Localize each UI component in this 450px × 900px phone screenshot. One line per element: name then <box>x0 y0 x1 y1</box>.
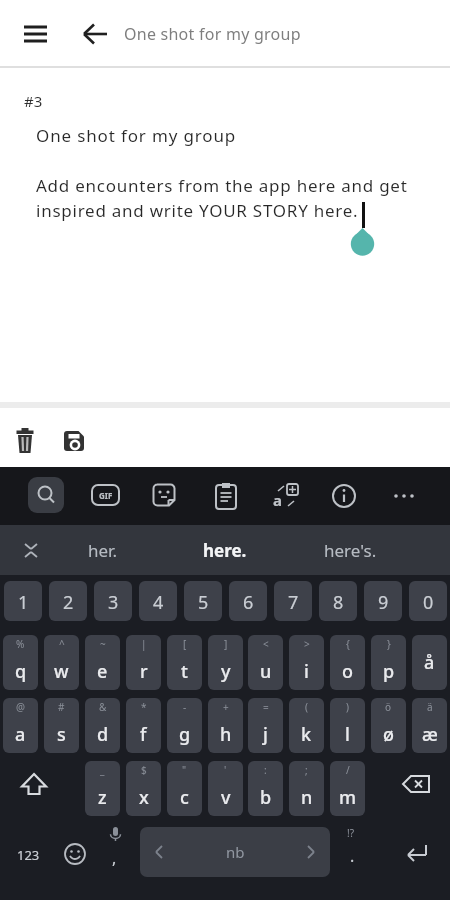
staticText: i <box>304 659 309 684</box>
button[interactable]: å <box>412 635 447 690</box>
staticText: | <box>141 637 147 651</box>
button[interactable]: + <box>208 698 243 753</box>
staticText: 7 <box>288 590 299 615</box>
button[interactable]: here. <box>170 525 280 575</box>
button[interactable]: 4 <box>139 581 177 621</box>
staticText: å <box>424 650 435 675</box>
button[interactable] <box>395 766 439 810</box>
button[interactable]: $ <box>126 761 161 816</box>
button[interactable]: 1 <box>4 581 42 621</box>
button[interactable]: > <box>289 635 324 690</box>
staticText: GIF <box>99 490 113 501</box>
button[interactable] <box>390 482 418 510</box>
button[interactable]: her. <box>50 525 155 575</box>
button[interactable]: ; <box>289 761 324 816</box>
staticText: * <box>141 700 147 714</box>
staticText: æ <box>422 722 438 747</box>
staticText: 0 <box>423 590 434 615</box>
button[interactable]: ) <box>330 698 365 753</box>
staticText: { <box>346 637 350 651</box>
staticText: b <box>260 785 272 810</box>
button[interactable]: 7 <box>274 581 312 621</box>
staticText: ; <box>305 763 308 777</box>
button[interactable]: a <box>272 482 300 510</box>
button[interactable] <box>398 835 436 871</box>
staticText: !? <box>347 826 355 840</box>
button[interactable]: 3 <box>94 581 132 621</box>
button[interactable]: _ <box>85 761 120 816</box>
staticText: , <box>112 847 117 869</box>
staticText: > <box>304 637 310 651</box>
button[interactable]: ä <box>412 698 447 753</box>
button[interactable] <box>28 477 64 513</box>
staticText: @ <box>16 700 25 714</box>
button[interactable] <box>62 841 88 867</box>
button[interactable]: : <box>248 761 283 816</box>
staticText: / <box>346 763 350 777</box>
button[interactable]: GIF <box>91 484 120 506</box>
staticText: & <box>99 700 107 714</box>
button[interactable]: 8 <box>319 581 357 621</box>
button[interactable]: ö <box>371 698 406 753</box>
button[interactable]: } <box>371 635 406 690</box>
button[interactable]: nb <box>140 827 330 877</box>
button[interactable] <box>61 428 87 454</box>
staticText: her. <box>88 539 117 562</box>
button[interactable]: 9 <box>364 581 402 621</box>
button[interactable] <box>12 766 56 810</box>
button[interactable]: 2 <box>49 581 87 621</box>
button[interactable]: % <box>3 635 38 690</box>
button[interactable]: ' <box>208 761 243 816</box>
staticText: o <box>342 659 353 684</box>
button[interactable]: @ <box>3 698 38 753</box>
button[interactable]: ] <box>208 635 243 690</box>
staticText: z <box>98 785 107 810</box>
button[interactable]: , <box>100 823 130 873</box>
staticText: ö <box>385 700 392 714</box>
staticText: m <box>339 785 357 810</box>
staticText: : <box>264 763 267 777</box>
button[interactable]: = <box>248 698 283 753</box>
button[interactable]: | <box>126 635 161 690</box>
button[interactable]: - <box>167 698 202 753</box>
staticText: ø <box>383 722 394 747</box>
button[interactable]: < <box>248 635 283 690</box>
button[interactable] <box>76 19 116 49</box>
staticText: j <box>263 722 268 747</box>
staticText: f <box>140 722 147 747</box>
staticText: a <box>273 490 282 510</box>
button[interactable] <box>16 532 46 568</box>
staticText: w <box>54 659 69 684</box>
button[interactable]: { <box>330 635 365 690</box>
button[interactable]: [ <box>167 635 202 690</box>
button[interactable]: 123 <box>8 837 48 873</box>
button[interactable] <box>14 20 58 50</box>
button[interactable]: " <box>167 761 202 816</box>
button[interactable]: 5 <box>184 581 222 621</box>
button[interactable]: ^ <box>44 635 79 690</box>
button[interactable] <box>214 482 238 510</box>
button[interactable]: # <box>44 698 79 753</box>
button[interactable]: ~ <box>85 635 120 690</box>
button[interactable] <box>152 483 178 509</box>
staticText: #3 <box>24 91 43 111</box>
button[interactable]: here's. <box>285 525 415 575</box>
button[interactable]: 6 <box>229 581 267 621</box>
staticText: ] <box>224 637 228 651</box>
button[interactable]: ( <box>289 698 324 753</box>
staticText: q <box>15 659 27 684</box>
staticText: x <box>139 785 149 810</box>
button[interactable]: !? <box>338 823 368 873</box>
staticText: 5 <box>198 590 209 615</box>
staticText: t <box>181 659 188 684</box>
staticText: Add encounters from the app here and get <box>36 174 408 197</box>
button[interactable]: 0 <box>409 581 447 621</box>
button[interactable] <box>330 482 358 510</box>
button[interactable]: / <box>330 761 365 816</box>
button[interactable]: * <box>126 698 161 753</box>
staticText: One shot for my group <box>36 124 237 147</box>
staticText: ) <box>346 700 349 714</box>
staticText: _ <box>100 763 105 777</box>
button[interactable] <box>12 427 38 455</box>
button[interactable]: & <box>85 698 120 753</box>
